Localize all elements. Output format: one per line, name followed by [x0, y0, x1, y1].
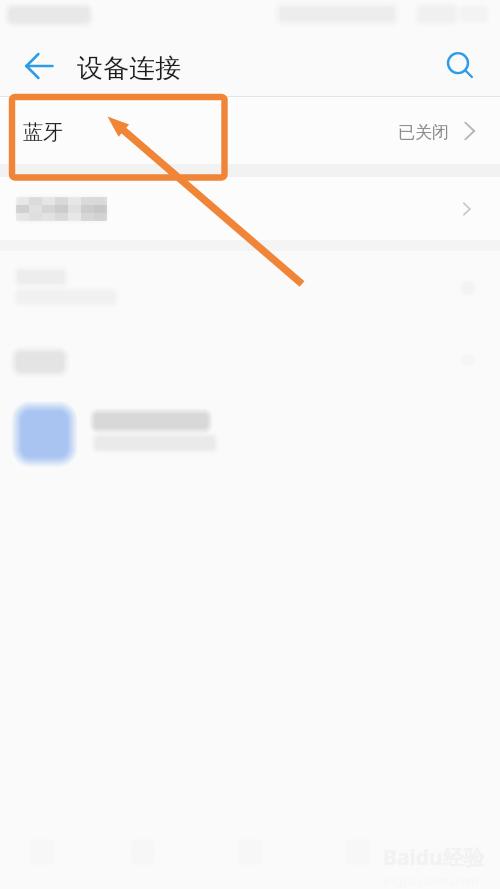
button[interactable]: Search — [439, 45, 483, 89]
staticText: Baidu经验 — [383, 843, 485, 872]
button[interactable]: 蓝牙 — [0, 97, 500, 164]
button[interactable]: Back — [16, 43, 62, 89]
button[interactable] — [0, 177, 500, 240]
staticText: 蓝牙 — [23, 120, 63, 145]
staticText: 设备连接 — [77, 52, 181, 85]
staticText: 已关闭 — [398, 122, 449, 143]
